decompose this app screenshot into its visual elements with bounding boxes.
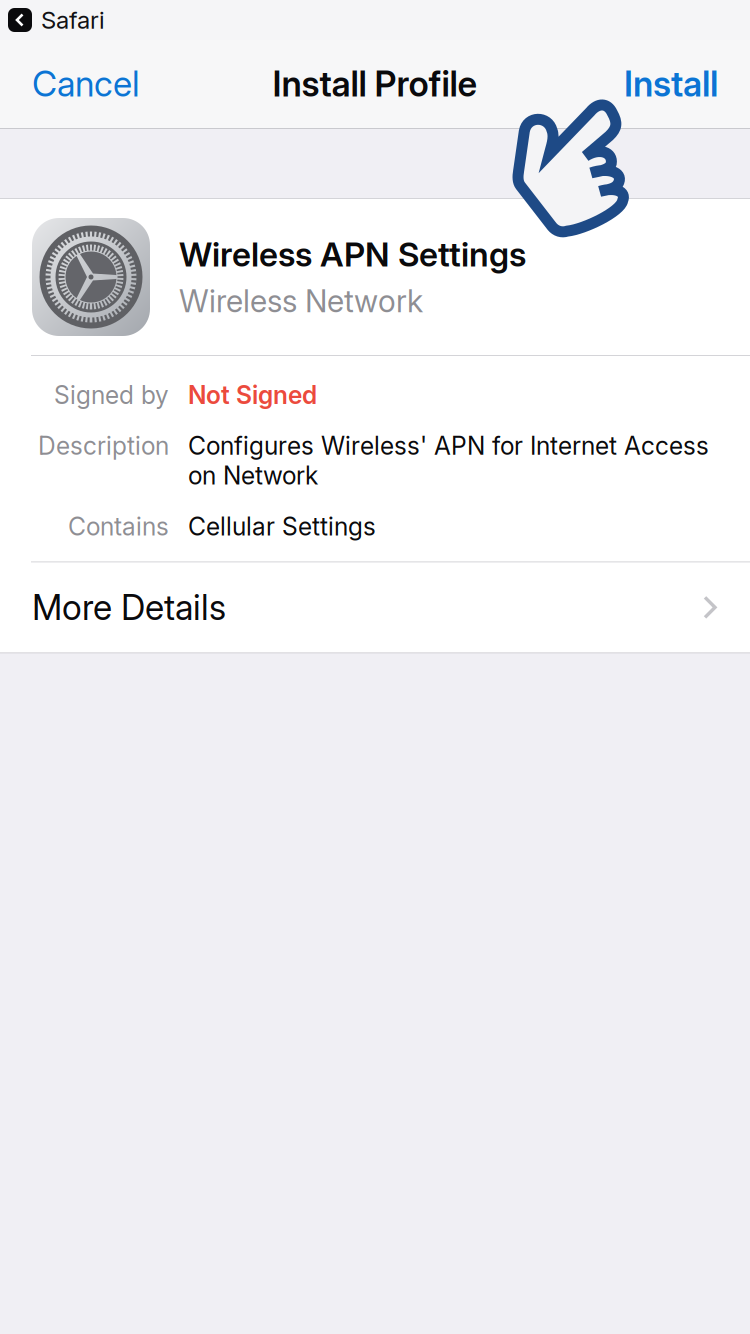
staticText: More Details xyxy=(32,586,226,628)
staticText: Description xyxy=(38,431,169,461)
staticText: Configures Wireless' APN for Internet Ac… xyxy=(188,431,709,490)
staticText: Install Profile xyxy=(272,63,477,105)
staticText: Wireless Network xyxy=(179,283,423,320)
button[interactable]: Cancel xyxy=(0,40,154,128)
staticText: Safari xyxy=(41,5,105,34)
staticText: Signed by xyxy=(54,380,169,410)
staticText: Wireless APN Settings xyxy=(179,234,526,275)
staticText: Cancel xyxy=(32,63,140,105)
staticText: Not Signed xyxy=(188,380,317,410)
staticText: Cellular Settings xyxy=(188,511,376,541)
staticText: Contains xyxy=(68,511,169,541)
button[interactable]: Install xyxy=(610,40,750,128)
button[interactable]: More Details xyxy=(0,562,750,652)
staticText: Install xyxy=(624,63,718,105)
button[interactable]: Safari xyxy=(0,5,105,34)
